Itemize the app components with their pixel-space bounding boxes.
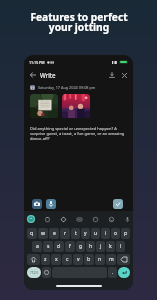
button[interactable]: r — [60, 228, 70, 239]
button[interactable]: p — [121, 228, 130, 239]
button[interactable]: u — [91, 228, 100, 239]
button[interactable]: ?123 — [27, 267, 41, 278]
button[interactable]: Gboard — [27, 215, 35, 223]
staticText: h — [89, 243, 93, 250]
button[interactable]: q — [27, 228, 37, 239]
button[interactable]: w — [38, 228, 48, 239]
staticText: l — [120, 243, 122, 250]
button[interactable]: Emoji — [108, 216, 114, 222]
staticText: u — [94, 230, 98, 237]
staticText: o — [114, 230, 118, 237]
button[interactable]: Settings — [60, 216, 66, 222]
button[interactable]: a — [32, 241, 42, 252]
button[interactable]: k — [106, 241, 115, 252]
staticText: m — [109, 256, 114, 263]
staticText: i — [105, 230, 107, 237]
button[interactable]: v — [73, 254, 83, 265]
button[interactable]: g — [76, 241, 85, 252]
button[interactable]: Enter — [118, 267, 130, 278]
staticText: w — [41, 230, 45, 237]
staticText: Did anything special or unexpected happe… — [30, 126, 127, 141]
button[interactable]: Emoji — [42, 267, 51, 278]
staticText: v — [77, 256, 80, 263]
button[interactable]: n — [95, 254, 105, 265]
staticText: p — [124, 230, 128, 237]
staticText: x — [55, 256, 58, 263]
staticText: Saturday, 17 Aug 2024 09:08 pm — [38, 85, 96, 90]
staticText: k — [109, 243, 112, 250]
staticText: g — [79, 243, 83, 250]
button[interactable]: i — [101, 228, 110, 239]
button[interactable]: m — [106, 254, 116, 265]
button[interactable]: b — [84, 254, 94, 265]
staticText: j — [100, 243, 102, 250]
button[interactable]: s — [43, 241, 53, 252]
button[interactable]: . — [108, 267, 117, 278]
button[interactable]: x — [51, 254, 61, 265]
staticText: ?123 — [30, 270, 38, 275]
staticText: n — [98, 256, 102, 263]
button[interactable]: t — [71, 228, 80, 239]
staticText: c — [66, 256, 69, 263]
button[interactable]: Stickers — [92, 216, 98, 222]
button[interactable]: j — [96, 241, 105, 252]
staticText: y — [84, 230, 87, 237]
button[interactable]: Close — [119, 70, 129, 80]
button[interactable]: y — [81, 228, 90, 239]
button[interactable]: Save — [107, 70, 117, 80]
button[interactable]: d — [54, 241, 64, 252]
staticText: t — [75, 230, 77, 237]
button[interactable]: Record audio — [46, 199, 56, 209]
button[interactable]: Shift — [27, 254, 40, 265]
button[interactable]: Add photo — [32, 199, 42, 209]
staticText: q — [30, 230, 34, 237]
staticText: 11:15 PM — [29, 60, 45, 65]
button[interactable]: o — [111, 228, 120, 239]
button[interactable]: z — [41, 254, 50, 265]
button[interactable]: Clipboard — [44, 216, 50, 222]
button[interactable]: h — [86, 241, 95, 252]
staticText: d — [57, 243, 61, 250]
staticText: Features to perfect your jotting — [30, 10, 128, 34]
button[interactable]: l — [116, 241, 125, 252]
staticText: Write — [40, 71, 56, 79]
button[interactable]: f — [65, 241, 75, 252]
staticText: z — [44, 256, 47, 263]
staticText: f — [69, 243, 71, 250]
button[interactable]: Done — [113, 199, 123, 209]
staticText: b — [87, 256, 91, 263]
staticText: . — [112, 269, 114, 276]
staticText: a — [36, 243, 39, 250]
button[interactable]: Back — [28, 70, 38, 80]
button[interactable]: Backspace — [117, 254, 130, 265]
staticText: e — [53, 230, 56, 237]
button[interactable]: e — [49, 228, 59, 239]
staticText: s — [47, 243, 50, 250]
button[interactable]: c — [62, 254, 72, 265]
button[interactable]: Voice input — [124, 216, 130, 222]
staticText: r — [64, 230, 67, 237]
button[interactable]: GIF — [76, 216, 82, 222]
